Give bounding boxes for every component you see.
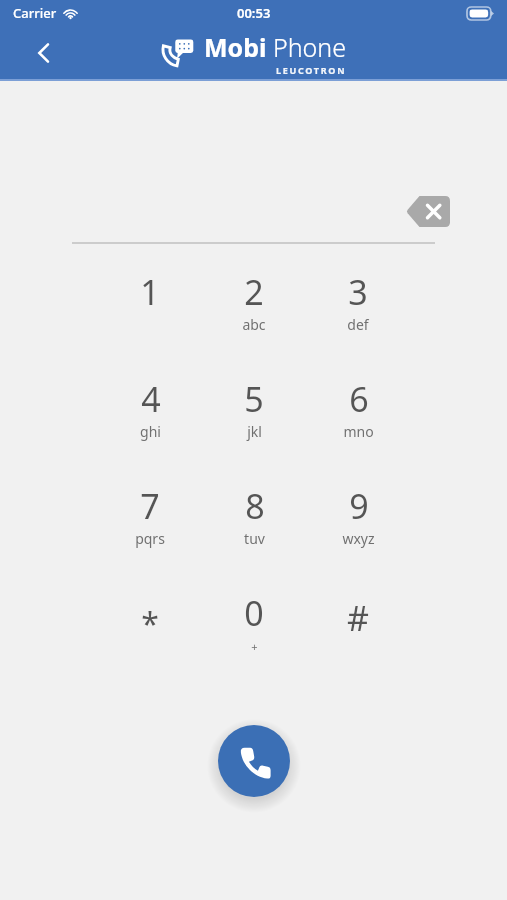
button[interactable]: 0 (202, 588, 306, 695)
button[interactable]: Backspace (405, 193, 451, 229)
button[interactable]: 9 (306, 481, 410, 588)
staticText: 1 (140, 269, 160, 315)
staticText: 8 (245, 483, 265, 529)
staticText: def (347, 315, 369, 334)
button[interactable]: 7 (98, 481, 202, 588)
staticText: 0 (244, 590, 264, 636)
staticText: 5 (244, 376, 264, 422)
staticText: LEUCOTRON (276, 64, 347, 76)
staticText: tuv (244, 529, 265, 548)
staticText: * (141, 602, 159, 646)
button[interactable]: 8 (202, 481, 306, 588)
button[interactable]: # (306, 588, 410, 695)
button[interactable]: 6 (306, 374, 410, 481)
staticText: pqrs (135, 529, 165, 548)
button[interactable]: 4 (98, 374, 202, 481)
staticText: 4 (141, 376, 161, 422)
staticText: wxyz (342, 529, 375, 548)
staticText: mno (343, 422, 374, 441)
button[interactable]: Call (218, 725, 290, 797)
staticText: abc (242, 315, 266, 334)
staticText: Mobi (204, 30, 267, 64)
staticText: ghi (140, 422, 161, 441)
button[interactable]: 1 (98, 267, 202, 374)
button[interactable]: Back (24, 34, 62, 72)
staticText: Phone (273, 30, 347, 64)
button[interactable]: 2 (202, 267, 306, 374)
button[interactable]: 3 (306, 267, 410, 374)
staticText: Carrier (13, 4, 57, 22)
button[interactable]: * (98, 588, 202, 695)
staticText: jkl (247, 422, 262, 441)
staticText: 3 (348, 269, 368, 315)
staticText: 9 (349, 483, 369, 529)
button[interactable]: 5 (202, 374, 306, 481)
staticText: 2 (244, 269, 264, 315)
staticText: # (347, 595, 369, 641)
staticText: 00:53 (237, 4, 271, 22)
staticText: + (251, 639, 258, 654)
staticText: 6 (349, 376, 369, 422)
staticText: 7 (140, 483, 160, 529)
